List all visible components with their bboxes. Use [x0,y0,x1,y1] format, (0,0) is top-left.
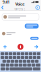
button[interactable]: Record voice message [17,44,23,50]
button[interactable]: Add attachment [2,44,8,50]
button[interactable]: Send [33,44,39,50]
button[interactable]: Details [34,4,41,11]
staticText: typing / replied [14,7,25,14]
staticText: 9:41 [2,0,9,5]
button[interactable]: Back [0,4,5,11]
staticText: Voice [15,1,24,6]
